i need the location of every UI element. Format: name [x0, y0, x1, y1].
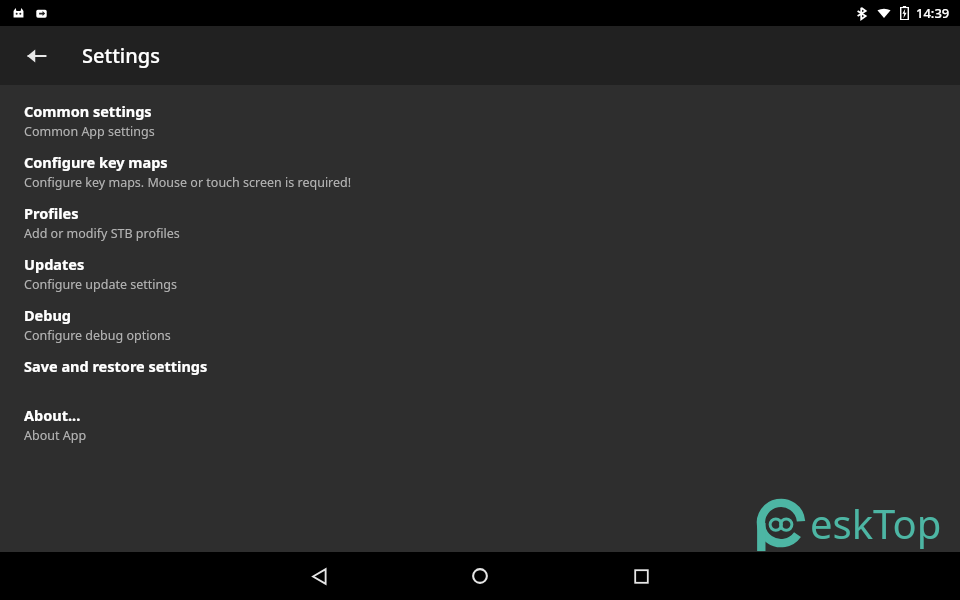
- staticText: About App: [24, 427, 87, 444]
- staticText: Configure key maps. Mouse or touch scree…: [24, 174, 352, 191]
- button[interactable]: Save and restore settings: [0, 350, 960, 399]
- button[interactable]: Home: [456, 552, 504, 600]
- staticText: 14:39: [916, 4, 950, 22]
- staticText: Configure key maps: [24, 152, 168, 172]
- staticText: eskTop: [810, 496, 942, 550]
- button[interactable]: Profiles: [0, 197, 960, 248]
- button[interactable]: Common settings: [0, 95, 960, 146]
- staticText: Configure update settings: [24, 276, 177, 293]
- staticText: Profiles: [24, 203, 79, 223]
- staticText: Settings: [82, 42, 160, 69]
- staticText: Updates: [24, 254, 85, 274]
- button[interactable]: Debug: [0, 299, 960, 350]
- button[interactable]: Configure key maps: [0, 146, 960, 197]
- button[interactable]: Updates: [0, 248, 960, 299]
- button[interactable]: Back: [13, 32, 61, 80]
- button[interactable]: Recent apps: [617, 552, 665, 600]
- button[interactable]: Back: [295, 552, 343, 600]
- staticText: Debug: [24, 305, 72, 325]
- staticText: Common App settings: [24, 123, 155, 140]
- staticText: Add or modify STB profiles: [24, 225, 180, 242]
- staticText: About...: [24, 405, 81, 425]
- button[interactable]: About...: [0, 399, 960, 450]
- staticText: Configure debug options: [24, 327, 171, 344]
- staticText: Common settings: [24, 101, 152, 121]
- staticText: Save and restore settings: [24, 356, 208, 376]
